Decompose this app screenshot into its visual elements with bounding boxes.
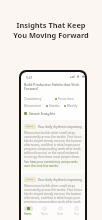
staticText: 9:41 xyxy=(26,75,33,79)
staticText: consistently across the weeks. Your focu… xyxy=(24,188,82,192)
staticText: Focus time xyxy=(58,97,74,101)
button[interactable]: You xyxy=(68,206,84,216)
staticText: Smart Insights xyxy=(29,111,56,116)
staticText: Momentum builds when small steps repeat xyxy=(24,131,82,135)
staticText: progress compounding week after week xyxy=(24,200,81,204)
staticText: Your daily rhythm is improving xyxy=(38,125,82,129)
button[interactable]: Plans xyxy=(36,206,52,216)
staticText: Your daily rhythm is improving xyxy=(38,178,82,182)
staticText: Consistency xyxy=(24,97,42,101)
button[interactable]: Stats xyxy=(52,206,68,216)
staticText: in energy that slows most people down. xyxy=(24,155,81,159)
button[interactable]: FOCUS xyxy=(22,120,84,170)
staticText: Insights That Keep You Moving Forward xyxy=(13,20,89,40)
staticText: FOCUS xyxy=(26,125,34,128)
staticText: without burnout or the usual midweek dip xyxy=(24,151,82,155)
staticText: consistently across the weeks. Your focu… xyxy=(24,135,82,139)
staticText: Stats xyxy=(57,212,63,216)
staticText: You xyxy=(74,212,79,216)
staticText: Momentum xyxy=(24,104,42,108)
staticText: Plans xyxy=(41,212,48,216)
button[interactable]: Smart Insights xyxy=(24,111,82,116)
staticText: Home xyxy=(24,212,32,216)
staticText: afternoons, and that is what keeps your xyxy=(24,196,80,200)
staticText: blocks stayed steady even on the busiest xyxy=(24,192,82,196)
staticText: afternoons, and that is what keeps your xyxy=(24,143,80,147)
button[interactable]: Consistency xyxy=(24,97,42,101)
staticText: progress compounding week after week xyxy=(24,147,81,151)
button[interactable]: Streaks xyxy=(46,104,60,108)
staticText: Streaks xyxy=(49,104,60,108)
button[interactable]: Weekly xyxy=(64,104,78,108)
staticText: Weekly xyxy=(67,104,78,108)
staticText: FOCUS xyxy=(26,178,34,181)
staticText: See how your consistency compounds over … xyxy=(24,160,78,168)
button[interactable]: Momentum xyxy=(24,104,42,108)
staticText: blocks stayed steady even on the busiest xyxy=(24,139,82,143)
button[interactable]: Focus time xyxy=(55,97,74,101)
staticText: Momentum builds when small steps repeat xyxy=(24,184,82,188)
button[interactable]: FOCUS xyxy=(22,173,84,206)
staticText: Build Productive Habits that Stick Forwa… xyxy=(24,82,80,91)
button[interactable]: Home xyxy=(21,206,36,216)
